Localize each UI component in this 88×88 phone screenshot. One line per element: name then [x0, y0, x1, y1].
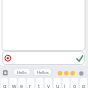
button[interactable]: q [1, 78, 8, 88]
staticText: Hellos [37, 70, 49, 75]
staticText: e [20, 82, 24, 88]
button[interactable]: Hello [13, 68, 31, 76]
button[interactable]: u [54, 78, 61, 88]
button[interactable] [4, 54, 12, 62]
button[interactable] [64, 70, 70, 76]
button[interactable]: e [18, 78, 25, 88]
staticText: r [29, 82, 32, 88]
button[interactable]: p [80, 78, 87, 88]
button[interactable]: o [71, 78, 78, 88]
button[interactable]: t [36, 78, 43, 88]
button[interactable]: r [27, 78, 34, 88]
staticText: q [3, 82, 7, 88]
button[interactable]: w [10, 78, 17, 88]
staticText: i [64, 82, 66, 88]
staticText: t [38, 82, 40, 88]
staticText: w [12, 82, 17, 88]
button[interactable]: y [45, 78, 52, 88]
staticText: y [47, 82, 50, 88]
button[interactable] [78, 70, 84, 76]
button[interactable] [75, 54, 84, 62]
staticText: p [82, 82, 86, 88]
button[interactable] [57, 70, 63, 76]
staticText: o [73, 82, 77, 88]
staticText: Hello [17, 70, 27, 75]
button[interactable]: i [62, 78, 69, 88]
button[interactable]: Hellos [33, 68, 52, 76]
button[interactable] [70, 70, 76, 76]
button[interactable] [2, 68, 9, 76]
staticText: u [56, 82, 60, 88]
